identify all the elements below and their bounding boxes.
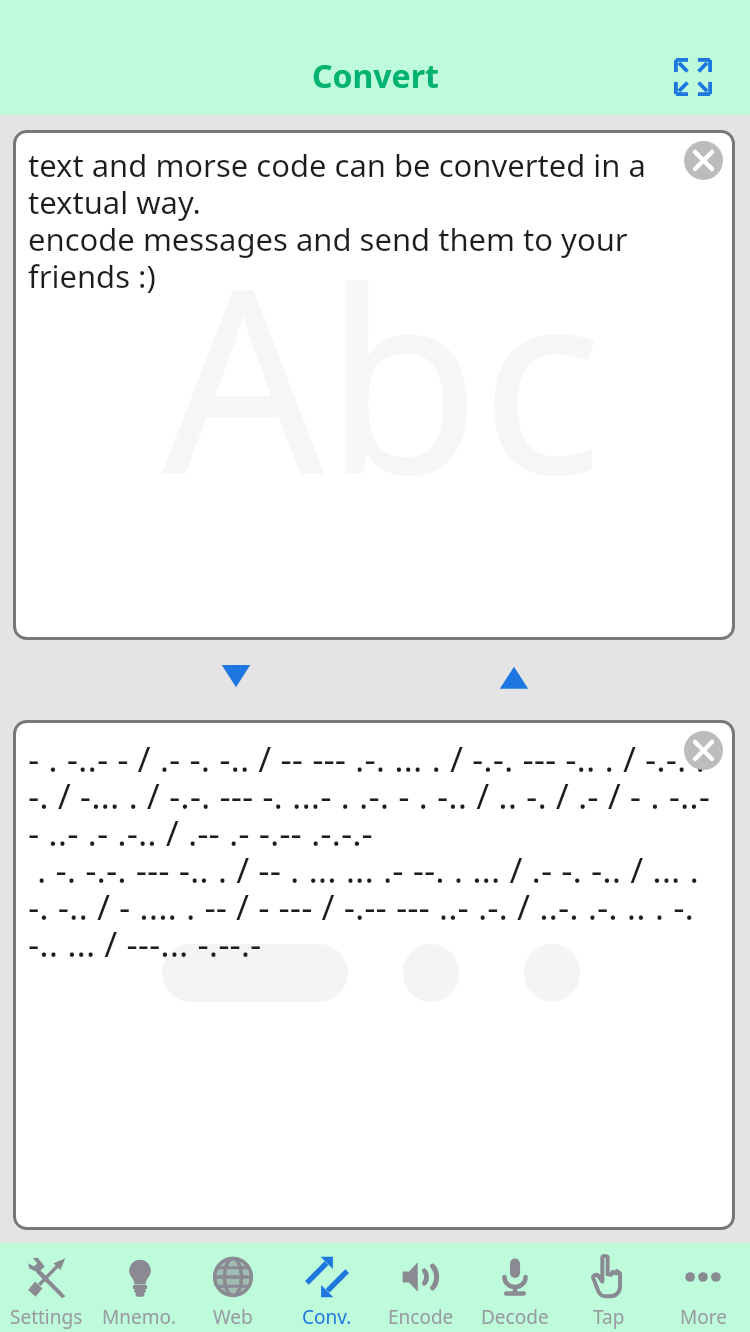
staticText: Decode bbox=[481, 1304, 549, 1330]
button[interactable]: Tap bbox=[562, 1243, 656, 1332]
staticText: text and morse code can be converted in … bbox=[28, 144, 649, 297]
staticText: Web bbox=[213, 1304, 253, 1330]
staticText: Convert bbox=[312, 54, 439, 98]
staticText: Encode bbox=[388, 1304, 454, 1330]
button[interactable]: Conv. bbox=[280, 1243, 374, 1332]
staticText: Abc bbox=[162, 201, 603, 547]
button[interactable]: Decode bbox=[468, 1243, 562, 1332]
button[interactable]: Mnemo. bbox=[93, 1243, 186, 1332]
staticText: Conv. bbox=[302, 1304, 352, 1330]
button[interactable]: Encode text to morse bbox=[207, 660, 265, 696]
button[interactable]: Clear bbox=[684, 731, 723, 770]
button[interactable]: More bbox=[656, 1243, 750, 1332]
staticText: Tap bbox=[593, 1304, 625, 1330]
staticText: - . -..- - / .- -. -.. / -- --- .-. ... … bbox=[28, 735, 717, 968]
button[interactable]: Fullscreen bbox=[666, 50, 720, 104]
staticText: Mnemo. bbox=[102, 1304, 177, 1330]
button[interactable]: Decode morse to text bbox=[485, 660, 543, 696]
staticText: More bbox=[680, 1304, 727, 1330]
button[interactable]: Encode bbox=[374, 1243, 468, 1332]
staticText: Settings bbox=[10, 1304, 83, 1330]
button[interactable]: Settings bbox=[0, 1243, 93, 1332]
button[interactable]: Web bbox=[186, 1243, 280, 1332]
button[interactable]: Clear bbox=[684, 141, 723, 180]
